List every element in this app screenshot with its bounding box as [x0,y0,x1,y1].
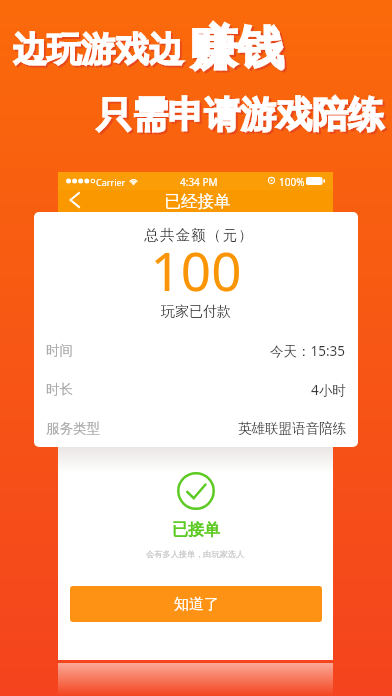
staticText: 4:34 PM [180,175,218,189]
button[interactable]: 服务类型 [34,409,358,447]
staticText: 100 [34,234,358,306]
staticText: 会有多人接单，由玩家选人 [146,549,245,559]
button[interactable]: 时长 [34,370,358,409]
staticText: 4小时 [311,381,346,399]
staticText: 总共金额（元） [37,226,358,244]
staticText: 赚钱 [190,19,284,78]
staticText: 已接单 [172,520,220,540]
staticText: 已经接单 [60,191,335,212]
staticText: 服务类型 [46,420,100,437]
staticText: 知道了 [174,595,219,614]
staticText: 100% [279,175,305,189]
button[interactable]: Back [60,190,86,213]
staticText: 玩家已付款 [34,303,358,321]
staticText: Carrier [96,176,126,188]
staticText: 英雄联盟语音陪练 [238,420,346,437]
staticText: 边玩游戏边 [13,28,183,71]
button[interactable]: 知道了 [70,586,322,622]
staticText: 时长 [46,381,73,398]
staticText: 今天：15:35 [270,342,346,360]
button[interactable]: 时间 [34,331,358,370]
staticText: 只需申请游戏陪练 [96,92,384,137]
staticText: 时间 [46,342,73,359]
